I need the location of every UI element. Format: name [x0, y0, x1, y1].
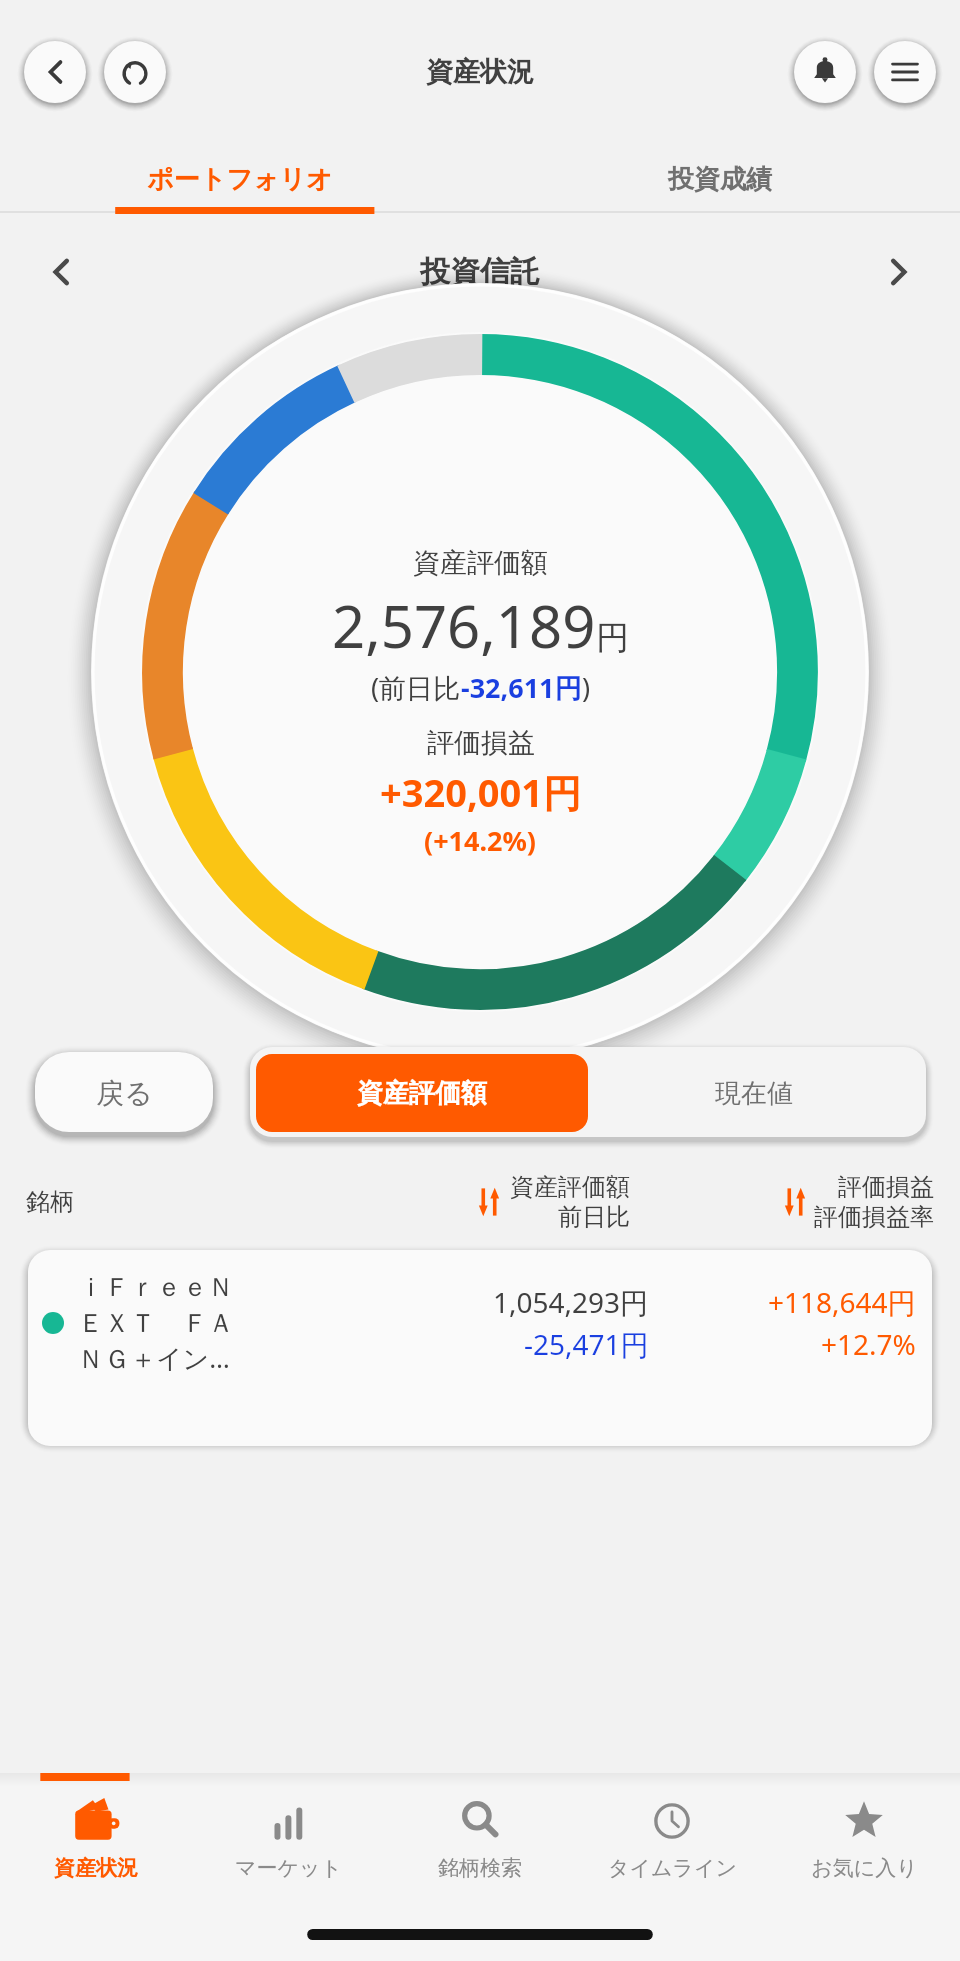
button[interactable]: Notifications [792, 39, 858, 105]
staticText: ＥＸＴ ＦＡ [78, 1304, 234, 1340]
button[interactable]: Back [22, 39, 88, 105]
staticText: 前日比 [558, 1202, 630, 1232]
staticText: 円 [596, 617, 629, 659]
staticText: -32,611円 [461, 669, 582, 706]
staticText: 現在値 [715, 1077, 793, 1110]
staticText: -25,471円 [524, 1325, 649, 1363]
staticText: ｉＦｒｅｅＮ [78, 1271, 234, 1304]
button[interactable]: Refresh [102, 39, 168, 105]
staticText: ) [582, 669, 591, 706]
staticText: (前日比 [371, 669, 461, 706]
staticText: ポートフォリオ [147, 163, 333, 196]
button[interactable]: Menu [872, 39, 938, 105]
button[interactable]: 戻る [30, 1048, 218, 1138]
staticText: 資産状況 [426, 55, 534, 89]
staticText: 銘柄 [26, 1187, 74, 1217]
button[interactable]: 投資成績 [480, 144, 960, 214]
button[interactable]: ｉＦｒｅｅＮ [22, 1248, 938, 1398]
staticText: 評価損益 [838, 1172, 934, 1202]
staticText: 資産評価額 [413, 546, 548, 580]
staticText: タイムライン [608, 1855, 737, 1881]
staticText: ＮＧ＋イン… [78, 1340, 230, 1376]
button[interactable]: タイムライン [576, 1787, 768, 1961]
staticText: お気に入り [811, 1855, 918, 1881]
staticText: 資産状況 [54, 1855, 138, 1881]
button[interactable]: 資産状況 [0, 1787, 192, 1961]
button[interactable]: 資産評価額 [328, 1172, 630, 1232]
staticText: +118,644円 [768, 1283, 916, 1321]
staticText: +320,001円 [380, 766, 581, 818]
button[interactable]: 資産評価額 [256, 1054, 588, 1132]
staticText: 資産評価額 [357, 1077, 487, 1110]
staticText: 評価損益 [427, 726, 535, 760]
button[interactable]: お気に入り [768, 1787, 960, 1961]
staticText: (+14.2%) [424, 822, 537, 859]
button[interactable]: 銘柄検索 [384, 1787, 576, 1961]
staticText: 銘柄検索 [438, 1855, 522, 1881]
staticText: 資産評価額 [510, 1172, 630, 1202]
staticText: +12.7% [821, 1325, 916, 1363]
staticText: 戻る [96, 1076, 153, 1111]
staticText: 1,054,293円 [493, 1283, 649, 1321]
button[interactable]: Previous category [26, 236, 98, 308]
button[interactable]: ポートフォリオ [0, 144, 480, 214]
button[interactable]: 評価損益 [640, 1172, 934, 1232]
staticText: 評価損益率 [814, 1202, 934, 1232]
button[interactable]: Next category [862, 236, 934, 308]
staticText: 投資成績 [668, 163, 772, 196]
button[interactable]: マーケット [192, 1787, 384, 1961]
button[interactable]: 現在値 [588, 1054, 920, 1132]
staticText: マーケット [235, 1855, 342, 1881]
staticText: 2,576,189 [332, 586, 596, 665]
staticText: 投資信託 [420, 253, 540, 291]
